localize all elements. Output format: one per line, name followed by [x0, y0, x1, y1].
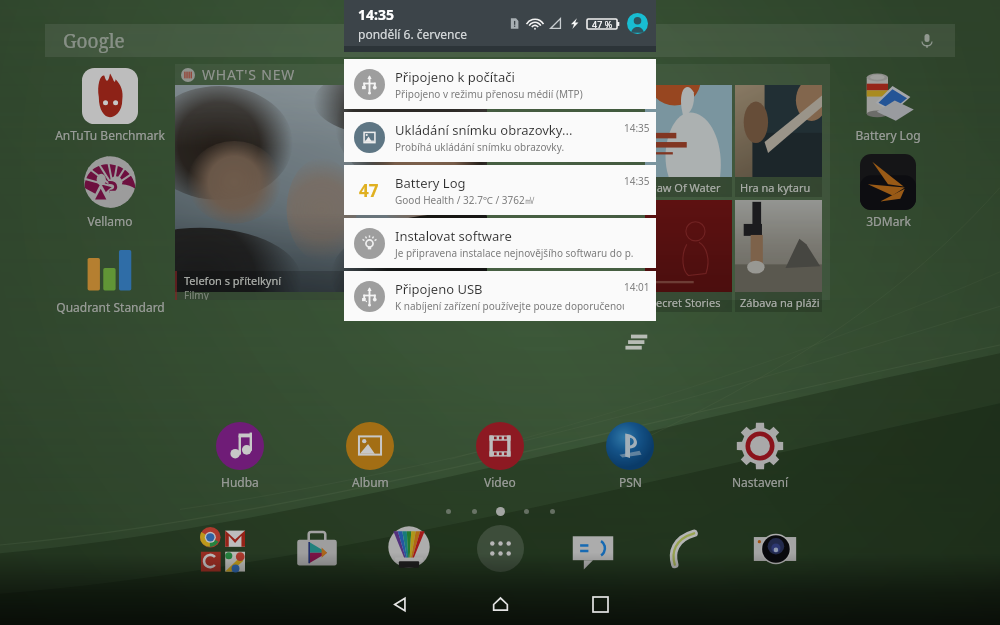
staticText: Battery Log: [855, 127, 921, 143]
button[interactable]: Připojeno k počítači: [344, 59, 656, 109]
staticText: Připojeno v režimu přenosu médií (MTP): [395, 87, 583, 101]
button[interactable]: Zábava na pláži: [735, 200, 822, 312]
staticText: 14:35: [358, 5, 394, 24]
staticText: Hudba: [221, 474, 259, 490]
button[interactable]: Phone: [661, 525, 707, 571]
button[interactable]: Album: [305, 422, 435, 490]
staticText: Telefon s přítelkyní: [184, 273, 282, 288]
staticText: 47: [359, 179, 379, 202]
button[interactable]: Home: [450, 583, 550, 625]
staticText: pondělí 6. července: [358, 26, 468, 42]
staticText: Je připravena instalace nejnovějšího sof…: [395, 246, 634, 260]
staticText: Vellamo: [87, 213, 133, 229]
staticText: Připojeno k počítači: [395, 68, 515, 86]
staticText: Album: [352, 474, 389, 490]
button[interactable]: Vellamo: [30, 154, 190, 229]
staticText: 3DMark: [866, 213, 911, 229]
button[interactable]: Quadrant Standard: [30, 240, 190, 315]
staticText: Paw Of Water: [650, 180, 721, 195]
button[interactable]: PSN: [565, 422, 695, 490]
button[interactable]: [175, 85, 487, 292]
button[interactable]: Messaging: [570, 528, 616, 574]
staticText: 47 %: [592, 18, 613, 30]
staticText: Battery Log: [395, 174, 466, 192]
staticText: Good Health / 32.7℃ / 3762㎷: [395, 193, 535, 207]
staticText: WHAT'S NEW: [202, 65, 296, 84]
staticText: Probíhá ukládání snímku obrazovky.: [395, 140, 565, 154]
staticText: 14:35: [624, 121, 650, 135]
button[interactable]: Sketch: [386, 524, 432, 570]
staticText: Ukládání snímku obrazovky...: [395, 121, 573, 139]
button[interactable]: Play Store: [294, 526, 340, 572]
button[interactable]: Hudba: [175, 422, 305, 490]
staticText: AnTuTu Benchmark: [55, 127, 165, 143]
button[interactable]: Připojeno USB: [344, 271, 656, 321]
staticText: 14:35: [624, 174, 650, 188]
button[interactable]: Google search: [45, 24, 955, 57]
staticText: Google: [63, 28, 125, 54]
staticText: 14:01: [624, 280, 650, 294]
button[interactable]: Telefon s přítelkyní: [175, 271, 487, 300]
staticText: Instalovat software: [395, 227, 512, 245]
button[interactable]: Instalovat software: [344, 218, 656, 268]
button[interactable]: Hra na kytaru: [735, 85, 822, 197]
staticText: Filmy: [184, 288, 209, 300]
button[interactable]: Battery Log: [808, 68, 968, 143]
button[interactable]: Camera: [752, 526, 798, 572]
staticText: PSN: [619, 474, 642, 490]
staticText: Připojeno USB: [395, 280, 483, 298]
button[interactable]: Recent apps: [550, 583, 650, 625]
staticText: Quadrant Standard: [56, 299, 165, 315]
button[interactable]: Apps: [477, 525, 524, 572]
button[interactable]: Back: [350, 583, 450, 625]
button[interactable]: AnTuTu Benchmark: [30, 68, 190, 143]
staticText: Video: [484, 474, 516, 490]
button[interactable]: Stack widget: [624, 333, 648, 351]
staticText: Secret Stories: [650, 295, 721, 310]
button[interactable]: Ukládání snímku obrazovky...: [344, 112, 656, 162]
button[interactable]: Paw Of Water: [645, 85, 732, 197]
button[interactable]: 3DMark: [808, 154, 968, 229]
button[interactable]: Secret Stories: [645, 200, 732, 312]
button[interactable]: Video: [435, 422, 565, 490]
staticText: Nastavení: [732, 474, 789, 490]
staticText: Hra na kytaru: [740, 180, 811, 195]
button[interactable]: Nastavení: [695, 422, 825, 490]
button[interactable]: 47: [344, 165, 656, 215]
staticText: Zábava na pláži: [740, 295, 820, 310]
button[interactable]: Google folder: [200, 527, 245, 572]
staticText: K nabíjení zařízení používejte pouze dop…: [395, 299, 624, 313]
